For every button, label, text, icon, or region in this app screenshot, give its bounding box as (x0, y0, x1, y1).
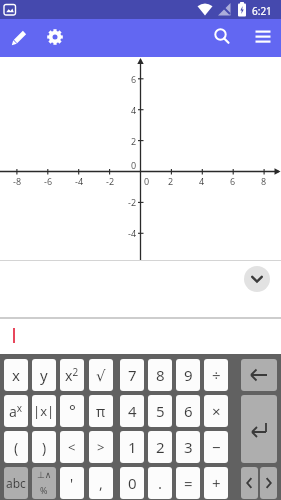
button[interactable] (6, 23, 34, 51)
staticText: 2 (168, 175, 174, 187)
button[interactable]: 3 (176, 431, 200, 463)
staticText: 4 (131, 104, 137, 116)
staticText: -6 (44, 175, 53, 187)
button[interactable]: x (4, 359, 28, 391)
staticText: 1 (128, 437, 137, 457)
staticText: % (40, 484, 48, 496)
staticText: √ (96, 367, 106, 384)
button[interactable]: ⊥∧ (32, 467, 56, 499)
button[interactable]: > (89, 431, 113, 463)
button[interactable]: √ (89, 359, 113, 391)
staticText: 0 (144, 175, 150, 187)
button[interactable]: , (89, 467, 113, 499)
staticText: 0 (128, 473, 137, 493)
button[interactable]: |x| (32, 395, 56, 427)
button[interactable]: 6 (176, 395, 200, 427)
button[interactable]: 2 (148, 431, 172, 463)
staticText: 9 (184, 365, 193, 385)
button[interactable] (241, 359, 277, 391)
staticText: 0 (131, 159, 137, 171)
staticText: x (12, 365, 20, 385)
staticText: × (212, 401, 221, 421)
staticText: -8 (13, 175, 22, 187)
button[interactable]: ax (4, 395, 28, 427)
button[interactable]: 5 (148, 395, 172, 427)
button[interactable] (241, 467, 258, 499)
staticText: < (68, 438, 76, 456)
staticText: 3 (184, 437, 193, 457)
staticText: abc (6, 475, 26, 491)
button[interactable] (208, 23, 236, 51)
button[interactable]: . (148, 467, 172, 499)
button[interactable] (244, 266, 270, 292)
button[interactable]: × (204, 395, 228, 427)
staticText: ) (42, 438, 47, 457)
staticText: ' (70, 474, 74, 493)
button[interactable]: ' (60, 467, 84, 499)
button[interactable]: y (32, 359, 56, 391)
staticText: 8 (156, 365, 165, 385)
staticText: -2 (106, 175, 115, 187)
button[interactable]: − (204, 431, 228, 463)
staticText: 4 (199, 175, 205, 187)
staticText: 2 (156, 437, 165, 457)
button[interactable]: π (89, 395, 113, 427)
button[interactable] (260, 467, 277, 499)
staticText: 6 (230, 175, 236, 187)
button[interactable]: 1 (120, 431, 144, 463)
button[interactable]: abc (4, 467, 28, 499)
staticText: -2 (128, 196, 137, 208)
button[interactable] (248, 23, 278, 51)
button[interactable] (41, 23, 69, 51)
staticText: x2 (65, 365, 79, 385)
staticText: . (158, 473, 163, 493)
staticText: ( (14, 438, 19, 457)
staticText: = (184, 473, 193, 493)
button[interactable]: x2 (60, 359, 84, 391)
staticText: y (40, 365, 48, 385)
staticText: 6:21 (252, 4, 272, 18)
staticText: 8 (261, 175, 267, 187)
staticText: 4 (128, 401, 137, 421)
staticText: ° (69, 400, 76, 422)
button[interactable]: ( (4, 431, 28, 463)
button[interactable]: 7 (120, 359, 144, 391)
button[interactable]: 4 (120, 395, 144, 427)
staticText: |x| (33, 402, 55, 420)
staticText: 6 (131, 73, 137, 85)
staticText: + (212, 473, 221, 493)
button[interactable]: ÷ (204, 359, 228, 391)
staticText: ÷ (212, 365, 221, 385)
staticText: 2 (131, 135, 137, 147)
staticText: 7 (128, 365, 137, 385)
button[interactable]: ° (60, 395, 84, 427)
button[interactable]: = (176, 467, 200, 499)
button[interactable]: 9 (176, 359, 200, 391)
staticText: ax (9, 401, 23, 421)
staticText: 6 (184, 401, 193, 421)
button[interactable]: + (204, 467, 228, 499)
staticText: -4 (75, 175, 84, 187)
staticText: ⊥∧ (37, 470, 52, 480)
button[interactable] (241, 395, 277, 463)
staticText: 5 (156, 401, 165, 421)
button[interactable]: 8 (148, 359, 172, 391)
button[interactable]: ) (32, 431, 56, 463)
staticText: -4 (128, 227, 137, 239)
staticText: − (212, 437, 221, 457)
staticText: > (97, 438, 105, 456)
staticText: , (99, 474, 103, 493)
button[interactable]: 0 (120, 467, 144, 499)
button[interactable]: < (60, 431, 84, 463)
staticText: π (96, 402, 106, 421)
